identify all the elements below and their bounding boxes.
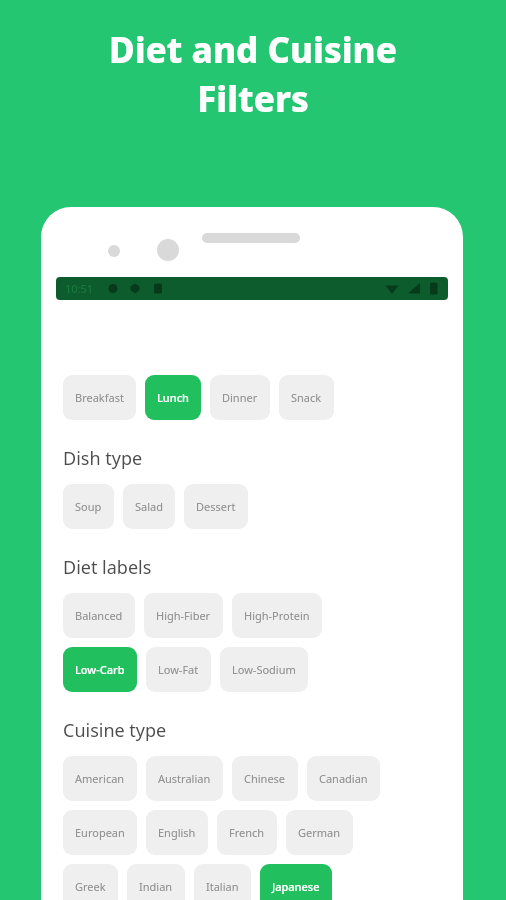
staticText: Snack (291, 390, 322, 405)
staticText: German (298, 825, 341, 840)
staticText: French (229, 825, 265, 840)
button[interactable]: High-Fiber (144, 593, 223, 638)
button[interactable]: Balanced (63, 593, 135, 638)
staticText: Canadian (319, 771, 368, 786)
button[interactable]: Indian (127, 864, 185, 900)
button[interactable]: French (217, 810, 277, 855)
button[interactable]: Australian (146, 756, 223, 801)
button[interactable]: Soup (63, 484, 114, 529)
button[interactable]: Italian (194, 864, 251, 900)
staticText: Italian (206, 879, 239, 894)
button[interactable]: Greek (63, 864, 118, 900)
staticText: Australian (158, 771, 211, 786)
staticText: Greek (75, 879, 106, 894)
staticText: Low-Fat (158, 662, 199, 677)
staticText: Dessert (196, 499, 236, 514)
button[interactable]: Salad (123, 484, 175, 529)
staticText: American (75, 771, 125, 786)
staticText: Diet and Cuisine Filters (109, 26, 397, 122)
staticText: Breakfast (75, 390, 124, 405)
staticText: Soup (75, 499, 102, 514)
button[interactable]: European (63, 810, 137, 855)
button[interactable]: High-Protein (232, 593, 322, 638)
staticText: English (158, 825, 196, 840)
button[interactable]: Breakfast (63, 375, 136, 420)
staticText: Lunch (157, 390, 189, 405)
staticText: High-Protein (244, 608, 310, 623)
button[interactable]: Snack (279, 375, 334, 420)
staticText: Dinner (222, 390, 258, 405)
staticText: Chinese (244, 771, 286, 786)
button[interactable]: Dinner (210, 375, 270, 420)
staticText: European (75, 825, 125, 840)
staticText: Low-Sodium (232, 662, 296, 677)
staticText: Low-Carb (75, 662, 125, 677)
staticText: Cuisine type (63, 718, 167, 743)
button[interactable]: English (146, 810, 208, 855)
button[interactable]: Low-Sodium (220, 647, 308, 692)
button[interactable]: Canadian (307, 756, 380, 801)
button[interactable]: Low-Carb (63, 647, 137, 692)
staticText: Diet labels (63, 555, 152, 580)
button[interactable]: American (63, 756, 137, 801)
button[interactable]: Low-Fat (146, 647, 211, 692)
staticText: Salad (135, 499, 163, 514)
button[interactable]: German (286, 810, 353, 855)
staticText: Indian (139, 879, 173, 894)
staticText: Dish type (63, 446, 143, 471)
staticText: Japanese (272, 879, 320, 894)
staticText: Balanced (75, 608, 123, 623)
button[interactable]: Dessert (184, 484, 248, 529)
staticText: High-Fiber (156, 608, 211, 623)
button[interactable]: Japanese (260, 864, 332, 900)
staticText: 10:51 (65, 281, 94, 296)
button[interactable]: Lunch (145, 375, 201, 420)
button[interactable]: Chinese (232, 756, 298, 801)
